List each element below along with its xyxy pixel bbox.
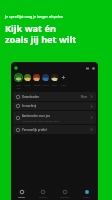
button[interactable]: Notifications — [92, 67, 95, 70]
staticText: Films — [24, 83, 31, 86]
staticText: Aanbevolen voor jou — [22, 114, 50, 118]
staticText: Meer — [60, 83, 67, 86]
button[interactable]: Zoeken — [32, 187, 54, 200]
staticText: Kijk wat én zoals jij het wilt — [5, 22, 77, 45]
button[interactable]: Profiel — [76, 187, 98, 200]
staticText: Series — [33, 83, 41, 86]
staticText: Meer — [81, 95, 88, 99]
button[interactable]: Downloaden — [13, 92, 96, 101]
button[interactable]: Series — [32, 73, 41, 86]
button[interactable]: Aanbevolen voor jou — [13, 111, 96, 124]
staticText: Profiel — [83, 195, 91, 198]
staticText: Sport — [42, 83, 49, 86]
button[interactable]: In wachtrij — [13, 102, 96, 110]
staticText: In wachtrij — [22, 104, 37, 108]
button[interactable]: Films — [23, 73, 32, 86]
button[interactable]: Home — [14, 66, 18, 70]
button[interactable]: Persoonlijk profiel — [13, 125, 96, 134]
staticText: Persoonlijk profiel — [22, 128, 47, 132]
button[interactable]: Kids — [50, 73, 59, 86]
staticText: Je speellijst mag je langer afspelen — [5, 14, 64, 19]
staticText: Op basis van wat je eerder keek — [22, 119, 60, 122]
button[interactable]: Home — [11, 187, 32, 200]
staticText: Zoeken — [39, 195, 48, 198]
staticText: Bewaard — [60, 195, 70, 198]
staticText: Kids — [52, 83, 57, 86]
button[interactable]: Voor jou — [14, 73, 23, 89]
button[interactable]: Cast — [86, 67, 89, 70]
staticText: Home — [18, 195, 25, 198]
button[interactable]: Sport — [41, 73, 50, 86]
staticText: Voor jou — [14, 83, 23, 89]
button[interactable]: Meer — [59, 73, 68, 86]
staticText: Downloaden — [22, 95, 40, 99]
button[interactable]: Bewaard — [54, 187, 76, 200]
